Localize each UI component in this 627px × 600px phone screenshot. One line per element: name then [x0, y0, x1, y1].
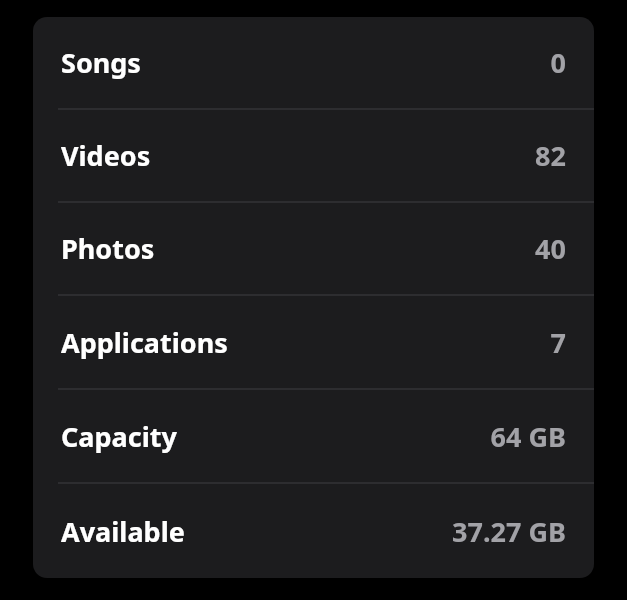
staticText: Photos	[61, 230, 155, 267]
button[interactable]: Available	[33, 484, 594, 578]
staticText: Applications	[61, 324, 228, 361]
button[interactable]: Applications	[33, 296, 594, 388]
staticText: Videos	[61, 137, 151, 174]
staticText: Capacity	[61, 418, 177, 455]
staticText: Songs	[61, 44, 141, 81]
staticText: 0	[550, 44, 566, 81]
staticText: Available	[61, 513, 185, 550]
button[interactable]: Videos	[33, 110, 594, 201]
button[interactable]: Capacity	[33, 390, 594, 482]
staticText: 7	[550, 324, 566, 361]
button[interactable]: Songs	[33, 17, 594, 108]
staticText: 37.27 GB	[452, 513, 566, 550]
staticText: 82	[535, 137, 566, 174]
staticText: 40	[535, 230, 566, 267]
staticText: 64 GB	[490, 418, 566, 455]
button[interactable]: Photos	[33, 203, 594, 294]
